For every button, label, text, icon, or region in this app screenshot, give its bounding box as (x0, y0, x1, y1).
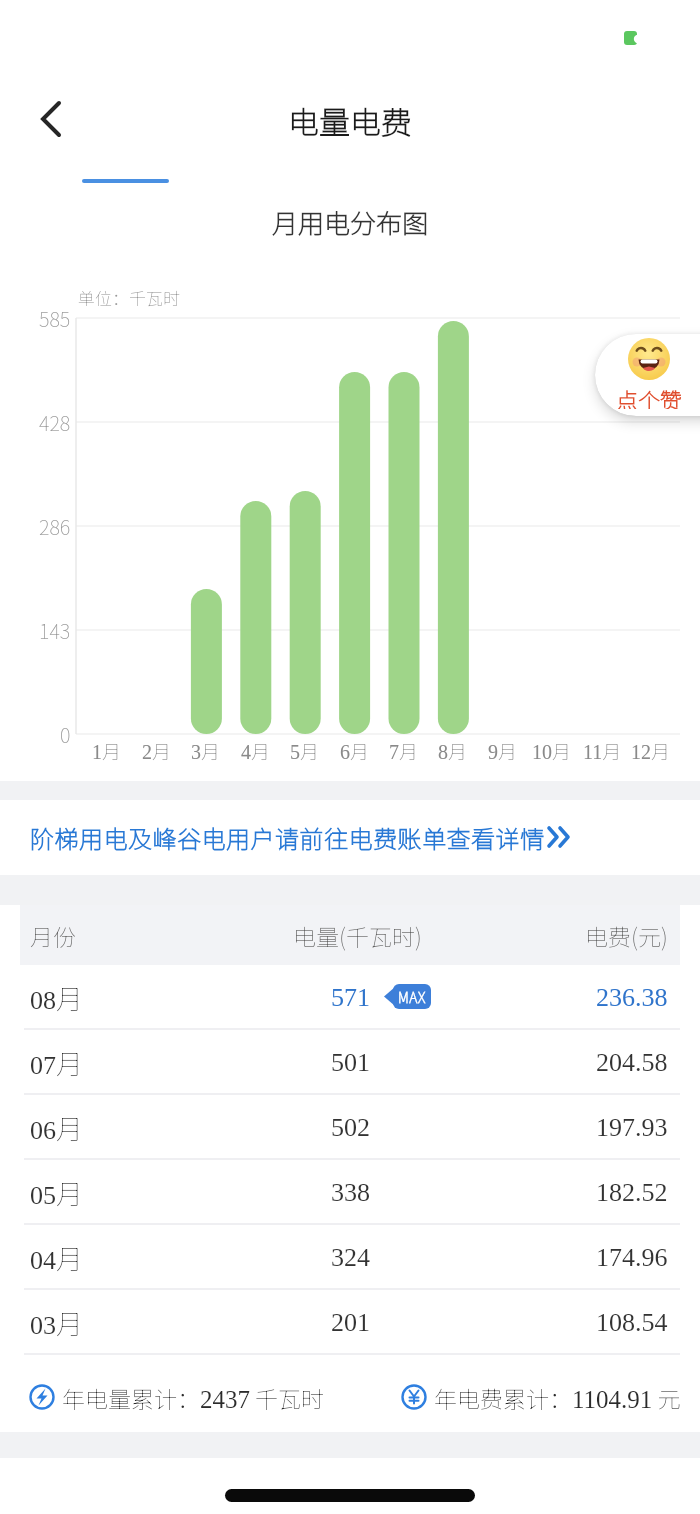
staticText: 6月 (340, 737, 370, 761)
staticText: 月用电分布图 (272, 203, 429, 241)
staticText: 1月 (92, 737, 122, 761)
button[interactable] (0, 1290, 700, 1355)
staticText: 428 (39, 408, 71, 436)
staticText: 05月 (30, 1173, 83, 1212)
staticText: 11月 (583, 737, 622, 761)
staticText: 0 (60, 720, 71, 748)
button[interactable] (0, 1030, 700, 1095)
staticText: 9月 (488, 737, 518, 761)
staticText: 08月 (30, 978, 83, 1017)
staticText: 年电量累计：2437 千瓦时 (62, 1381, 325, 1414)
staticText: 年电费累计：1104.91 元 (434, 1381, 681, 1414)
staticText: 电量(千瓦时) (293, 919, 422, 952)
staticText: 电量电费 (288, 98, 412, 143)
staticText: 585 (39, 304, 71, 332)
staticText: 201 (331, 1308, 370, 1337)
staticText: 12月 (631, 737, 671, 761)
staticText: 174.96 (596, 1243, 668, 1272)
staticText: 338 (331, 1178, 370, 1207)
staticText: 182.52 (596, 1178, 668, 1207)
staticText: 04月 (30, 1238, 83, 1277)
staticText: MAX (398, 987, 426, 1007)
staticText: 108.54 (596, 1308, 668, 1337)
staticText: 电费(元) (585, 919, 668, 952)
staticText: 06月 (30, 1108, 83, 1147)
staticText: 点个赞 (616, 383, 683, 409)
button[interactable] (0, 1225, 700, 1290)
staticText: 204.58 (596, 1048, 668, 1077)
staticText: 5月 (290, 737, 320, 761)
button[interactable]: 阶梯用电及峰谷电用户请前往电费账单查看详情 (30, 800, 590, 875)
staticText: 10月 (532, 737, 572, 761)
button[interactable] (0, 1160, 700, 1225)
button[interactable] (0, 965, 700, 1030)
staticText: 4月 (241, 737, 271, 761)
staticText: 单位：千瓦时 (78, 285, 180, 310)
staticText: 3月 (191, 737, 221, 761)
staticText: 197.93 (596, 1113, 668, 1142)
staticText: 03月 (30, 1303, 83, 1342)
staticText: 286 (39, 512, 71, 540)
staticText: 324 (331, 1243, 370, 1272)
staticText: 236.38 (596, 983, 668, 1012)
staticText: 2月 (142, 737, 172, 761)
button[interactable] (0, 1095, 700, 1160)
staticText: 7月 (389, 737, 419, 761)
staticText: 501 (331, 1048, 370, 1077)
staticText: 阶梯用电及峰谷电用户请前往电费账单查看详情 (30, 820, 545, 855)
staticText: 月份 (30, 919, 76, 952)
staticText: 07月 (30, 1043, 83, 1082)
staticText: 143 (39, 616, 71, 644)
button[interactable] (595, 334, 700, 416)
button[interactable] (20, 95, 80, 145)
staticText: 8月 (438, 737, 468, 761)
staticText: 571 (331, 983, 370, 1012)
staticText: 502 (331, 1113, 370, 1142)
